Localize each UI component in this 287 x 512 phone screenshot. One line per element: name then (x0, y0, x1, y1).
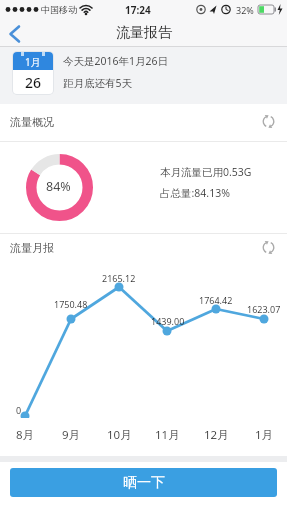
staticText: 8月 (16, 427, 35, 441)
staticText: 10月 (107, 427, 132, 441)
staticText: 9月 (62, 427, 81, 441)
staticText: 2165.12 (102, 272, 136, 284)
staticText: 流量概况 (10, 115, 54, 129)
staticText: 晒一下 (123, 474, 165, 492)
button[interactable]: 1月 (13, 52, 53, 94)
staticText: 1月 (255, 427, 274, 441)
staticText: 32% (236, 4, 254, 16)
button[interactable]: 晒一下 (10, 468, 277, 497)
button[interactable]: 流量报告 (0, 22, 287, 44)
staticText: 0 (16, 404, 22, 416)
staticText: 1月 (25, 55, 41, 69)
button[interactable] (261, 240, 276, 255)
staticText: 1623.07 (247, 303, 281, 315)
staticText: 流量月报 (10, 241, 54, 255)
staticText: 中国移动 (41, 4, 77, 15)
staticText: 本月流量已用0.53G (160, 165, 252, 179)
staticText: 26 (25, 73, 42, 92)
staticText: 11月 (155, 427, 180, 441)
staticText: 今天是2016年1月26日 (63, 54, 169, 68)
button[interactable] (261, 114, 276, 129)
staticText: 84% (46, 178, 71, 194)
staticText: 12月 (204, 427, 229, 441)
staticText: 1439.00 (151, 315, 185, 327)
staticText: 流量报告 (116, 24, 172, 42)
staticText: 占总量:84.13% (160, 186, 230, 200)
staticText: 1750.48 (54, 298, 88, 310)
staticText: 17:24 (125, 3, 151, 16)
staticText: 1764.42 (199, 294, 233, 306)
staticText: 距月底还有5天 (63, 76, 133, 90)
